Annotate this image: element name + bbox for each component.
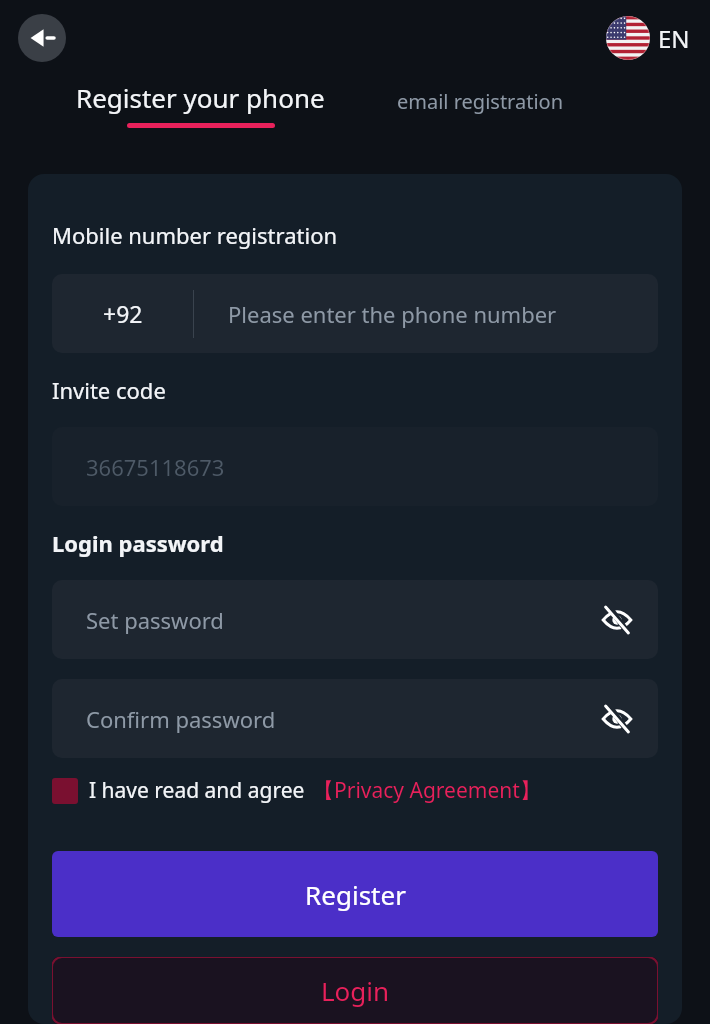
button[interactable]: email registration (397, 88, 564, 115)
staticText: EN (658, 22, 690, 55)
staticText: I have read and agree (89, 776, 305, 805)
staticText: Confirm password (86, 704, 276, 734)
button[interactable]: I have read and agree (52, 776, 541, 805)
button[interactable]: Show password (600, 702, 634, 736)
staticText: 36675118673 (86, 452, 225, 482)
button[interactable]: Login (52, 957, 658, 1024)
staticText: Login password (52, 528, 224, 558)
staticText: +92 (103, 298, 143, 329)
button[interactable]: Set password (52, 580, 658, 659)
staticText: email registration (397, 88, 564, 115)
staticText: Set password (86, 605, 224, 635)
staticText: Register (305, 877, 406, 912)
button[interactable]: +92 (52, 274, 658, 353)
staticText: 【Privacy Agreement】 (313, 776, 541, 805)
button[interactable]: EN (606, 16, 690, 60)
staticText: Invite code (52, 375, 166, 405)
button[interactable]: Back (18, 14, 66, 62)
staticText: Register your phone (76, 80, 325, 115)
staticText: Please enter the phone number (228, 299, 557, 329)
button[interactable]: Confirm password (52, 679, 658, 758)
staticText: Login (321, 973, 390, 1008)
staticText: Mobile number registration (52, 220, 338, 250)
button[interactable]: Register your phone (76, 80, 325, 128)
button[interactable]: 36675118673 (52, 427, 658, 506)
button[interactable]: Register (52, 851, 658, 937)
button[interactable]: Show password (600, 603, 634, 637)
